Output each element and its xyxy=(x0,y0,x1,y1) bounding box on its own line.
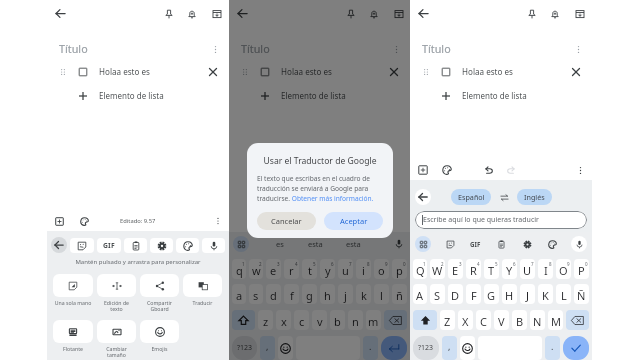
button[interactable]: Clipboard xyxy=(494,237,508,251)
button[interactable]: Shift xyxy=(413,310,437,330)
button[interactable]: Z xyxy=(440,310,455,330)
button[interactable]: Edición de texto xyxy=(97,274,136,313)
button[interactable]: t xyxy=(302,259,317,279)
button[interactable]: S xyxy=(430,284,445,304)
button[interactable]: More options xyxy=(387,40,405,58)
button[interactable]: Back xyxy=(51,237,67,253)
button[interactable]: K xyxy=(538,284,553,304)
button[interactable]: Emoji xyxy=(278,336,293,360)
button[interactable]: H xyxy=(502,284,517,304)
button[interactable]: f xyxy=(284,284,299,304)
button[interactable]: E xyxy=(448,259,463,279)
button[interactable]: Back xyxy=(233,4,252,23)
button[interactable]: m xyxy=(366,310,381,330)
button[interactable]: p xyxy=(392,259,407,279)
button[interactable]: Pin xyxy=(341,4,360,23)
button[interactable]: Backspace xyxy=(384,310,407,330)
button[interactable]: L xyxy=(556,284,571,304)
button[interactable]: Español xyxy=(451,189,491,205)
button[interactable]: Compartir Gboard xyxy=(140,274,179,313)
button[interactable]: Aceptar xyxy=(324,212,383,230)
button[interactable]: . xyxy=(363,336,378,360)
button[interactable]: Archive xyxy=(207,4,226,23)
button[interactable]: Traducir xyxy=(183,274,222,306)
button[interactable]: , xyxy=(260,336,275,360)
button[interactable]: Una sola mano xyxy=(53,274,93,306)
button[interactable]: d xyxy=(266,284,281,304)
button[interactable]: Done xyxy=(563,336,589,360)
button[interactable]: Color xyxy=(77,214,91,228)
button[interactable]: Settings xyxy=(520,237,534,251)
button[interactable]: F xyxy=(466,284,481,304)
button[interactable]: k xyxy=(356,284,371,304)
button[interactable]: P xyxy=(574,259,589,279)
button[interactable]: I xyxy=(538,259,553,279)
button[interactable]: Escribe aquí lo que quieras traducir xyxy=(415,211,587,229)
button[interactable]: Archive xyxy=(570,4,589,23)
button[interactable]: l xyxy=(374,284,389,304)
button[interactable]: Voice input xyxy=(571,236,587,252)
button[interactable]: s xyxy=(249,284,263,304)
button[interactable]: Toolbox xyxy=(233,236,249,252)
button[interactable]: More options xyxy=(206,40,224,58)
button[interactable]: Emojis xyxy=(140,320,179,352)
button[interactable]: Toolbox xyxy=(415,236,431,252)
button[interactable]: Backspace xyxy=(566,310,589,330)
button[interactable]: More xyxy=(573,163,587,177)
button[interactable]: Enter xyxy=(381,336,407,360)
button[interactable]: More xyxy=(211,214,225,228)
button[interactable]: J xyxy=(520,284,535,304)
button[interactable]: N xyxy=(530,310,545,330)
button[interactable]: g xyxy=(302,284,317,304)
button[interactable]: Back xyxy=(51,4,70,23)
button[interactable]: j xyxy=(338,284,353,304)
button[interactable]: U xyxy=(520,259,535,279)
button[interactable]: c xyxy=(294,310,309,330)
button[interactable]: Cancelar xyxy=(257,212,316,230)
button[interactable]: Reminder xyxy=(545,4,564,23)
button[interactable]: Color xyxy=(440,163,454,177)
button[interactable]: u xyxy=(338,259,353,279)
button[interactable]: C xyxy=(476,310,491,330)
button[interactable]: Back xyxy=(414,4,433,23)
button[interactable]: W xyxy=(430,259,445,279)
button[interactable]: w xyxy=(249,259,263,279)
button[interactable]: More options xyxy=(569,40,587,58)
button[interactable]: GIF xyxy=(468,237,482,251)
button[interactable]: ?123 xyxy=(232,336,257,360)
button[interactable]: Y xyxy=(502,259,517,279)
button[interactable]: x xyxy=(276,310,291,330)
button[interactable] xyxy=(150,238,173,253)
button[interactable]: Pin xyxy=(159,4,178,23)
button[interactable]: Archive xyxy=(389,4,408,23)
button[interactable]: ñ xyxy=(392,284,407,304)
button[interactable]: Add xyxy=(52,214,66,228)
button[interactable]: v xyxy=(312,310,327,330)
button[interactable]: h xyxy=(320,284,335,304)
button[interactable]: Q xyxy=(413,259,427,279)
button[interactable]: B xyxy=(512,310,527,330)
button[interactable]: Stickers xyxy=(443,237,457,251)
button[interactable] xyxy=(70,238,94,253)
button[interactable]: a xyxy=(232,284,246,304)
button[interactable]: Voice input xyxy=(392,237,406,251)
button[interactable]: . xyxy=(545,336,560,360)
button[interactable]: ?123 xyxy=(413,336,439,360)
button[interactable]: Holaa esto es xyxy=(47,63,229,80)
button[interactable]: Reminder xyxy=(182,4,201,23)
button[interactable]: Cambiar tamaño xyxy=(97,320,136,359)
button[interactable]: Flotante xyxy=(53,320,93,352)
button[interactable]: Emoji xyxy=(460,336,475,360)
button[interactable]: GIF xyxy=(97,238,121,253)
button[interactable]: n xyxy=(348,310,363,330)
button[interactable]: V xyxy=(494,310,509,330)
button[interactable]: T xyxy=(484,259,499,279)
button[interactable]: Inglés xyxy=(517,189,552,205)
button[interactable]: Back xyxy=(415,189,431,205)
button[interactable]: G xyxy=(484,284,499,304)
button[interactable]: O xyxy=(556,259,571,279)
button[interactable] xyxy=(202,238,225,253)
button[interactable]: Themes xyxy=(545,237,559,251)
button[interactable]: Swap languages xyxy=(498,191,510,203)
